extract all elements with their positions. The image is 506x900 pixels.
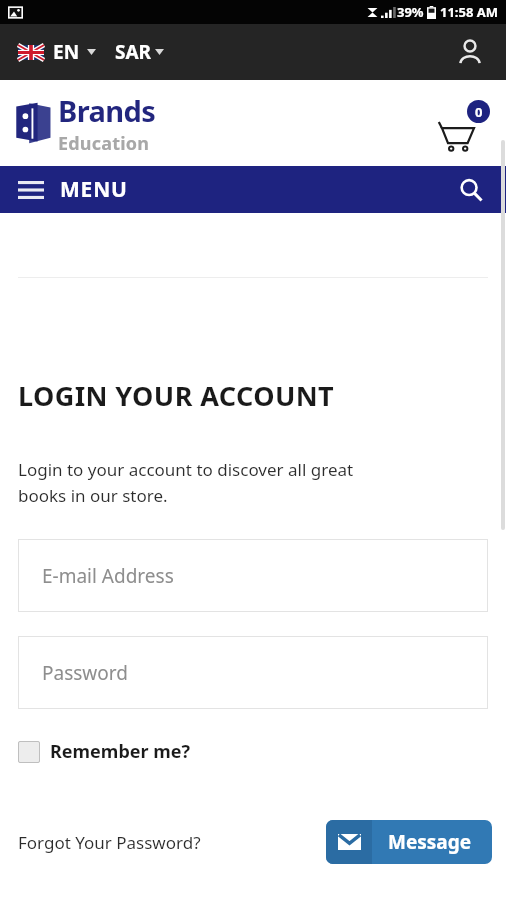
staticText: 0 [475,103,483,121]
button[interactable]: Brands [14,91,156,156]
staticText: MENU [60,175,128,204]
button[interactable]: Password [18,636,488,709]
button[interactable]: Search [450,169,492,211]
staticText: 11:58 AM [440,3,499,21]
button[interactable]: E-mail Address [18,539,488,612]
button[interactable]: EN [18,33,96,71]
staticText: 39% [397,3,424,21]
button[interactable]: SAR [115,33,164,71]
button[interactable]: Message [326,820,492,864]
staticText: Brands [58,91,156,130]
staticText: Message [388,829,472,855]
button[interactable]: Cart [438,100,490,152]
staticText: Education [58,131,150,156]
staticText: Forgot Your Password? [18,831,201,854]
staticText: Login to your account to discover all gr… [18,458,354,507]
button[interactable]: Account [448,30,492,74]
button[interactable]: Forgot Your Password? [18,831,201,854]
button[interactable]: Remember me? [18,739,191,764]
staticText: E-mail Address [42,563,174,589]
button[interactable]: MENU [18,175,128,204]
staticText: Password [42,660,128,686]
staticText: Remember me? [50,739,191,764]
staticText: LOGIN YOUR ACCOUNT [18,377,335,414]
staticText: SAR [115,39,152,65]
staticText: EN [53,39,80,65]
